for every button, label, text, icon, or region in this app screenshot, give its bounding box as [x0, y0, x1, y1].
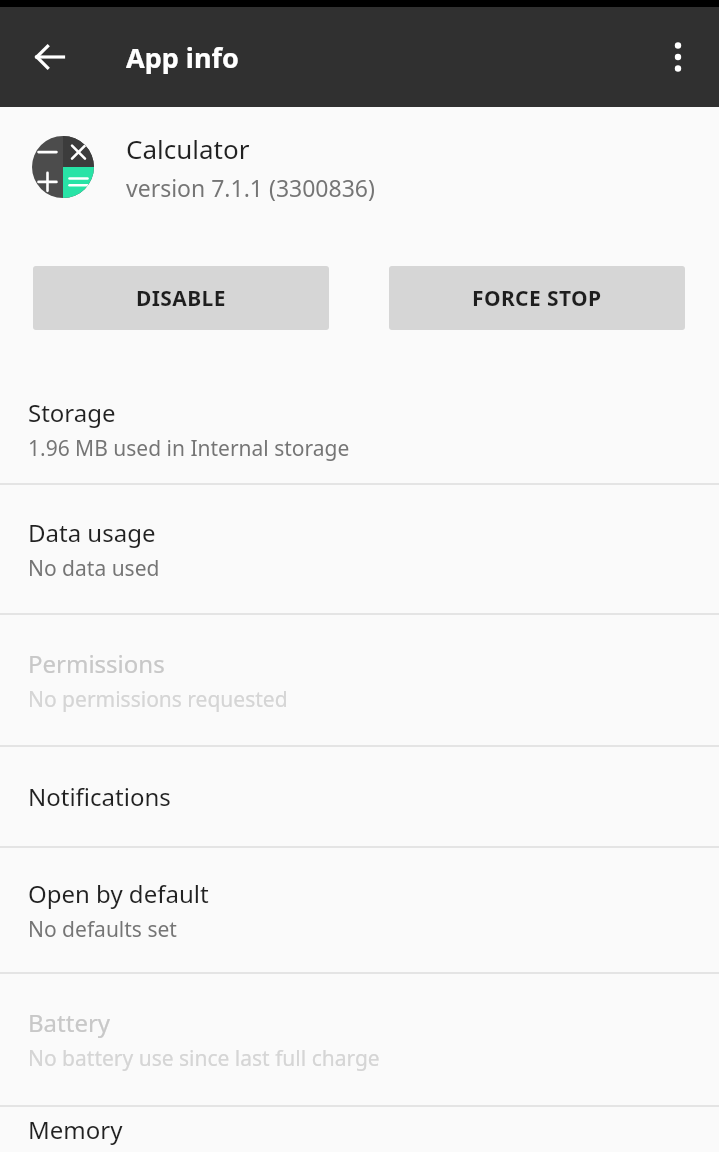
staticText: Notifications: [28, 780, 171, 813]
button[interactable]: DISABLE: [33, 266, 329, 330]
staticText: No data used: [28, 554, 160, 583]
staticText: Calculator: [126, 131, 250, 166]
button[interactable]: Data usage: [0, 485, 719, 613]
staticText: Battery: [28, 1006, 111, 1039]
button[interactable]: Memory: [0, 1107, 719, 1152]
staticText: version 7.1.1 (3300836): [126, 172, 375, 203]
staticText: Open by default: [28, 877, 209, 910]
button[interactable]: More options: [646, 25, 710, 89]
button[interactable]: Open by default: [0, 848, 719, 972]
staticText: No battery use since last full charge: [28, 1044, 380, 1073]
staticText: Memory: [28, 1113, 123, 1146]
staticText: No permissions requested: [28, 685, 288, 714]
staticText: Permissions: [28, 647, 165, 680]
staticText: Data usage: [28, 516, 156, 549]
staticText: App info: [126, 39, 239, 76]
button[interactable]: Permissions: [0, 615, 719, 745]
staticText: 1.96 MB used in Internal storage: [28, 434, 350, 463]
staticText: No defaults set: [28, 915, 177, 944]
button[interactable]: Notifications: [0, 747, 719, 846]
staticText: DISABLE: [136, 284, 226, 313]
button[interactable]: Back: [14, 21, 86, 93]
staticText: FORCE STOP: [472, 284, 602, 313]
staticText: Storage: [28, 396, 116, 429]
button[interactable]: Battery: [0, 974, 719, 1105]
button[interactable]: Storage: [0, 375, 719, 483]
button[interactable]: FORCE STOP: [389, 266, 685, 330]
